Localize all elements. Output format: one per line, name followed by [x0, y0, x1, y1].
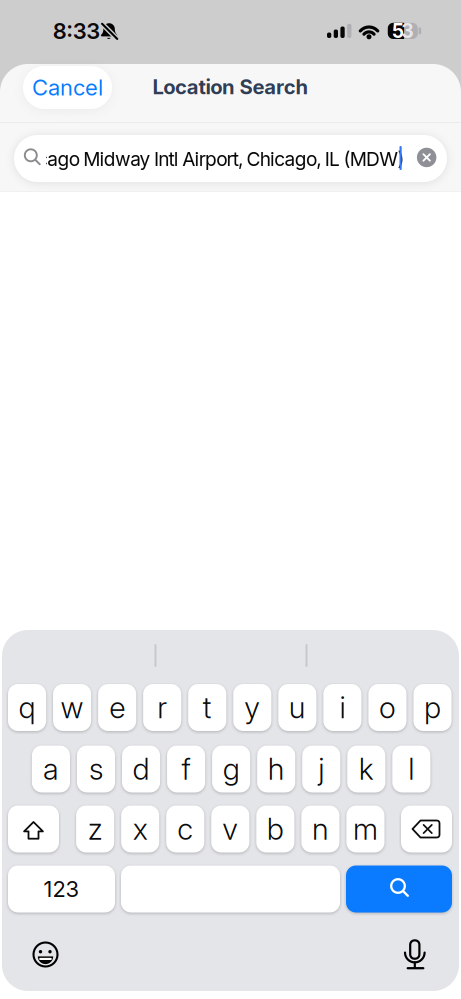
button[interactable]: c — [166, 805, 204, 852]
staticText: v — [222, 811, 238, 847]
staticText: cago Midway Intl Airport, Chicago, IL (M… — [37, 147, 404, 171]
button[interactable]: f — [167, 745, 205, 792]
button[interactable]: b — [256, 805, 294, 852]
button[interactable]: u — [278, 684, 316, 731]
button[interactable]: z — [76, 805, 114, 852]
staticText: g — [223, 751, 240, 787]
button[interactable]: g — [212, 745, 250, 792]
staticText: 8:33 — [53, 18, 100, 44]
button[interactable]: p — [413, 684, 451, 731]
button[interactable]: j — [302, 745, 340, 792]
button[interactable]: i — [323, 684, 361, 731]
button[interactable]: w — [53, 684, 91, 731]
staticText: Location Search — [152, 75, 309, 99]
button[interactable]: Cancel — [23, 66, 112, 109]
staticText: o — [379, 690, 396, 725]
button[interactable]: e — [98, 684, 136, 731]
staticText: d — [133, 751, 150, 787]
staticText: p — [424, 690, 441, 725]
button[interactable]: Shift — [8, 805, 59, 852]
button[interactable]: d — [122, 745, 160, 792]
staticText: e — [109, 690, 125, 725]
staticText: r — [157, 690, 167, 725]
button[interactable]: x — [121, 805, 159, 852]
staticText: u — [289, 690, 306, 725]
button[interactable]: m — [346, 805, 384, 852]
button[interactable]: o — [368, 684, 406, 731]
staticText: s — [89, 751, 103, 787]
staticText: y — [244, 690, 260, 725]
button[interactable]: Dictate — [0, 0, 461, 999]
staticText: l — [408, 751, 414, 787]
button[interactable]: Clear text — [417, 148, 436, 167]
staticText: b — [267, 811, 284, 847]
button[interactable]: y — [233, 684, 271, 731]
staticText: q — [19, 690, 36, 725]
button[interactable]: Delete — [401, 805, 452, 852]
button[interactable]: s — [77, 745, 115, 792]
button[interactable]: Search text field — [14, 135, 447, 182]
staticText: j — [318, 751, 324, 787]
staticText: m — [353, 811, 378, 847]
staticText: a — [43, 751, 59, 787]
button[interactable]: Numbers — [8, 865, 115, 912]
button[interactable]: h — [257, 745, 295, 792]
button[interactable]: r — [143, 684, 181, 731]
staticText: z — [88, 811, 103, 847]
staticText: c — [177, 811, 193, 847]
button[interactable]: q — [8, 684, 46, 731]
staticText: f — [182, 751, 191, 787]
staticText: 5 — [392, 19, 404, 43]
button[interactable]: n — [301, 805, 339, 852]
staticText: x — [133, 811, 148, 847]
button[interactable]: k — [347, 745, 385, 792]
button[interactable]: l — [392, 745, 430, 792]
staticText: n — [312, 811, 329, 847]
staticText: h — [268, 751, 285, 787]
staticText: 123 — [43, 876, 79, 902]
staticText: w — [61, 690, 84, 725]
staticText: t — [203, 690, 212, 725]
staticText: 3 — [401, 19, 413, 43]
button[interactable]: Space — [121, 865, 340, 912]
staticText: k — [359, 751, 374, 787]
button[interactable]: t — [188, 684, 226, 731]
staticText: Cancel — [32, 74, 103, 101]
staticText: i — [339, 690, 345, 725]
button[interactable]: a — [32, 745, 70, 792]
button[interactable]: Search — [346, 865, 452, 912]
button[interactable]: v — [211, 805, 249, 852]
button[interactable]: Emoji — [0, 0, 461, 999]
